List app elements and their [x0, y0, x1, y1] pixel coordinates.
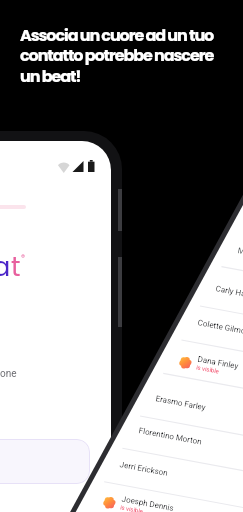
staticText: t	[11, 249, 21, 285]
staticText: Please insert your phone number to creat…	[0, 368, 17, 408]
button[interactable]: Florentino Morton	[138, 426, 203, 447]
staticText: Jerri Erickson	[119, 460, 169, 478]
button[interactable]: Erasmo Farley	[155, 394, 207, 412]
staticText: is visible	[120, 503, 144, 512]
button[interactable]: Carly Harvey	[215, 284, 243, 301]
staticText: ®	[21, 252, 26, 263]
button[interactable]	[0, 439, 90, 484]
staticText: bea	[0, 249, 11, 285]
staticText: Erasmo Farley	[155, 394, 207, 412]
staticText: Colette Gilmore	[197, 318, 243, 337]
button[interactable]: Joesph Dennis	[102, 491, 175, 512]
staticText: Carly Harvey	[215, 284, 243, 301]
staticText: Joesph Dennis	[121, 494, 175, 512]
button[interactable]: Colette Gilmore	[197, 318, 243, 337]
staticText: Associa un cuore ad un tuo contatto potr…	[20, 24, 218, 88]
button[interactable]: Dana Finley	[178, 351, 240, 378]
button[interactable]: Jerri Erickson	[119, 460, 169, 478]
staticText: Florentino Morton	[138, 426, 203, 447]
staticText: Dana Finley	[197, 354, 240, 371]
staticText: Mar	[237, 244, 243, 258]
staticText: is visible	[196, 363, 220, 374]
